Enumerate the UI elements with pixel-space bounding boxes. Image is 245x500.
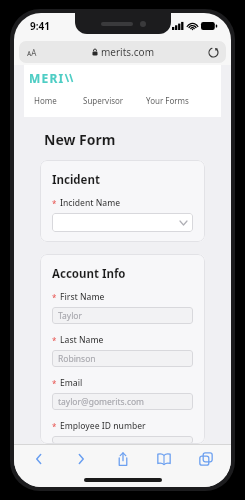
button[interactable]: Supervisor	[83, 93, 124, 108]
button[interactable]: Robinson	[52, 350, 193, 367]
button[interactable]	[52, 436, 193, 444]
button[interactable]: Share	[110, 446, 136, 472]
staticText: Taylor	[58, 310, 82, 322]
staticText: *	[52, 292, 57, 303]
button[interactable]: ᴀA	[19, 41, 226, 63]
staticText: *	[52, 198, 57, 209]
button[interactable]: Taylor	[52, 307, 193, 324]
staticText: Your Forms	[146, 95, 189, 106]
staticText: 9:41	[30, 19, 50, 33]
staticText: *	[52, 421, 57, 432]
staticText: Incident Name	[60, 197, 121, 209]
button[interactable]: Home	[34, 93, 57, 108]
button[interactable]: Your Forms	[146, 93, 189, 108]
button[interactable]: Tabs	[193, 446, 219, 472]
staticText: Home	[34, 95, 57, 106]
staticText: Supervisor	[83, 95, 124, 106]
staticText: New Form	[44, 130, 116, 149]
staticText: ᴀA	[27, 47, 37, 58]
button[interactable]: Forward	[68, 446, 94, 472]
staticText: Account Info	[52, 266, 126, 282]
button[interactable]: Reload	[207, 46, 219, 58]
button[interactable]: Bookmarks	[151, 446, 177, 472]
staticText: First Name	[60, 291, 105, 303]
button[interactable]: taylor@gomerits.com	[52, 393, 193, 410]
staticText: Employee ID number	[60, 420, 146, 432]
staticText: merits.com	[101, 45, 154, 59]
staticText: Robinson	[58, 353, 96, 365]
staticText: Last Name	[60, 334, 104, 346]
button[interactable]: Select incident name	[52, 213, 193, 232]
button[interactable]: Back	[26, 446, 52, 472]
staticText: *	[52, 335, 57, 346]
staticText: taylor@gomerits.com	[58, 396, 145, 408]
staticText: Email	[60, 377, 83, 389]
staticText: *	[52, 378, 57, 389]
staticText: MERI	[29, 70, 65, 86]
staticText: Incident	[52, 172, 100, 188]
